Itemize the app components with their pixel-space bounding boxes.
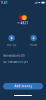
button[interactable]: Freeze (30, 35, 38, 46)
staticText: 9:41 (1, 1, 8, 4)
staticText: Add money (14, 84, 31, 88)
staticText: Transactions (0) (3, 54, 25, 57)
staticText: Freeze (30, 43, 38, 46)
button[interactable]: Top up (7, 35, 17, 46)
staticText: Top up (7, 43, 17, 46)
staticText: No transactions yet (3, 60, 28, 64)
button[interactable]: Add money (3, 83, 43, 89)
staticText: •• 4821 (17, 21, 28, 25)
